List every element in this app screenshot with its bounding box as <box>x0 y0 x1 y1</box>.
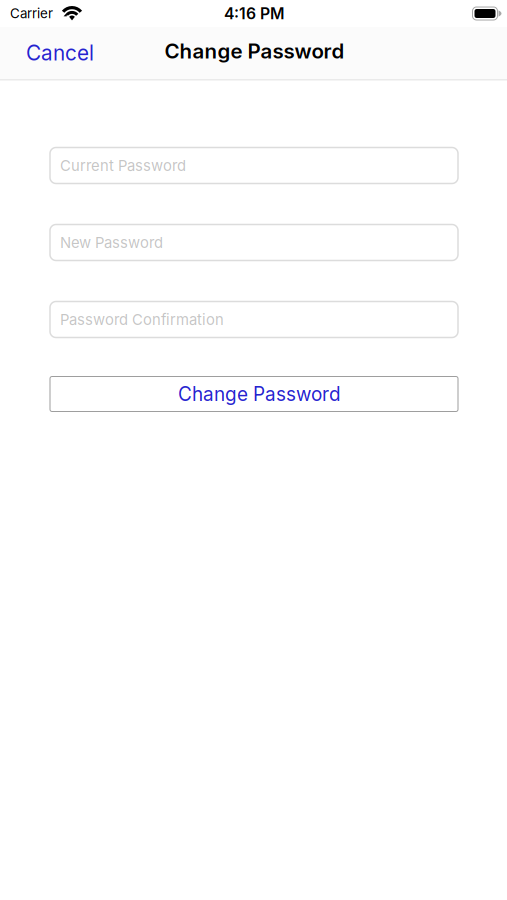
staticText: Password Confirmation <box>60 310 224 328</box>
textField[interactable]: Password Confirmation <box>60 310 458 328</box>
staticText: Carrier <box>10 5 53 21</box>
staticText: Cancel <box>26 40 94 66</box>
staticText: Current Password <box>60 156 186 174</box>
staticText: Change Password <box>164 39 344 63</box>
button[interactable]: Cancel <box>26 40 94 66</box>
textField[interactable]: New Password <box>60 233 458 251</box>
textField[interactable]: Current Password <box>60 156 458 174</box>
staticText: Change Password <box>178 382 341 405</box>
button[interactable]: Change Password <box>50 376 458 411</box>
staticText: New Password <box>60 233 163 251</box>
staticText: 4:16 PM <box>224 4 285 23</box>
staticText: Current Password <box>60 156 186 174</box>
staticText: Password Confirmation <box>60 310 224 328</box>
staticText: New Password <box>60 233 163 251</box>
